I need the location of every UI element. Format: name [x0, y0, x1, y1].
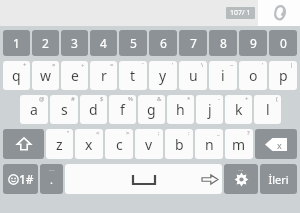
staticText: z: [56, 135, 63, 154]
button[interactable]: Attach: [258, 0, 300, 26]
staticText: 8: [220, 35, 227, 51]
staticText: w: [40, 66, 52, 85]
staticText: 107/ 1: [230, 8, 251, 18]
button[interactable]: d: [80, 95, 107, 124]
staticText: (: [276, 95, 278, 103]
staticText: g: [147, 100, 156, 119]
button[interactable]: 9: [239, 30, 267, 56]
staticText: &: [157, 95, 162, 103]
button[interactable]: 4: [90, 30, 117, 56]
button[interactable]: o: [239, 61, 267, 90]
button[interactable]: b: [165, 129, 193, 159]
staticText: o: [249, 66, 258, 85]
staticText: |: [290, 61, 294, 69]
staticText: f: [120, 100, 125, 119]
staticText: ?: [247, 129, 250, 137]
staticText: #: [71, 95, 75, 103]
button[interactable]: 1: [3, 30, 30, 56]
button[interactable]: h: [167, 95, 194, 124]
button[interactable]: Settings: [224, 164, 258, 194]
staticText: \: [201, 61, 204, 69]
staticText: 5: [130, 35, 137, 51]
staticText: -: [218, 95, 220, 103]
staticText: t: [130, 66, 136, 85]
button[interactable]: 5: [119, 30, 147, 56]
staticText: =: [110, 61, 114, 69]
button[interactable]: v: [135, 129, 163, 159]
button[interactable]: 1#: [3, 164, 38, 194]
staticText: d: [89, 100, 98, 119]
staticText: ÷: [81, 61, 85, 69]
button[interactable]: i: [209, 61, 237, 90]
button[interactable]: 0: [269, 30, 297, 56]
button[interactable]: 7: [179, 30, 207, 56]
staticText: 1: [13, 35, 20, 51]
button[interactable]: x: [75, 129, 103, 159]
staticText: 3: [71, 35, 78, 51]
button[interactable]: Backspace: [255, 129, 297, 159]
button[interactable]: 6: [149, 30, 177, 56]
button[interactable]: 3: [61, 30, 88, 56]
button[interactable]: t: [119, 61, 147, 90]
staticText: y: [159, 66, 167, 85]
button[interactable]: g: [138, 95, 165, 124]
staticText: %: [128, 95, 133, 103]
staticText: `: [142, 61, 144, 69]
staticText: ...: [49, 164, 55, 174]
button[interactable]: e: [61, 61, 88, 90]
staticText: +: [23, 61, 27, 69]
staticText: 2: [42, 35, 49, 51]
staticText: x: [85, 135, 93, 154]
button[interactable]: m: [225, 129, 253, 159]
button[interactable]: k: [225, 95, 252, 124]
staticText: .: [50, 172, 53, 187]
staticText: m: [232, 135, 246, 154]
staticText: 7: [190, 35, 197, 51]
button[interactable]: z: [46, 129, 73, 159]
staticText: j: [208, 100, 212, 119]
staticText: x: [277, 139, 282, 151]
staticText: 9: [250, 35, 257, 51]
button[interactable]: 8: [209, 30, 237, 56]
staticText: a: [30, 100, 38, 119]
button[interactable]: 2: [32, 30, 59, 56]
staticText: s: [61, 100, 68, 119]
button[interactable]: Period: [40, 164, 63, 194]
staticText: c: [116, 135, 123, 154]
button[interactable]: y: [149, 61, 177, 90]
staticText: v: [145, 135, 153, 154]
staticText: $: [100, 95, 104, 103]
staticText: ×: [52, 61, 56, 69]
staticText: _: [217, 129, 220, 137]
button[interactable]: Shift: [3, 129, 44, 159]
button[interactable]: İleri: [260, 164, 297, 194]
staticText: h: [176, 100, 185, 119]
staticText: k: [235, 100, 243, 119]
button[interactable]: j: [196, 95, 223, 124]
button[interactable]: q: [3, 61, 30, 90]
staticText: ...: [238, 164, 244, 174]
staticText: ': [262, 61, 264, 69]
button[interactable]: u: [179, 61, 207, 90]
staticText: *: [187, 95, 191, 103]
staticText: İleri: [268, 172, 289, 187]
staticText: p: [279, 66, 288, 85]
button[interactable]: c: [105, 129, 133, 159]
staticText: :: [188, 129, 190, 137]
staticText: e: [71, 66, 79, 85]
button[interactable]: n: [195, 129, 223, 159]
staticText: ": [67, 129, 70, 137]
button[interactable]: f: [109, 95, 136, 124]
button[interactable]: r: [90, 61, 117, 90]
staticText: 0: [280, 35, 287, 51]
button[interactable]: p: [269, 61, 297, 90]
staticText: 1#: [19, 171, 34, 187]
button[interactable]: l: [254, 95, 281, 124]
button[interactable]: s: [50, 95, 78, 124]
staticText: r: [101, 66, 107, 85]
button[interactable]: w: [32, 61, 59, 90]
button[interactable]: a: [20, 95, 48, 124]
staticText: u: [189, 66, 198, 85]
button[interactable]: Space: [65, 164, 222, 194]
staticText: ~: [230, 61, 234, 69]
